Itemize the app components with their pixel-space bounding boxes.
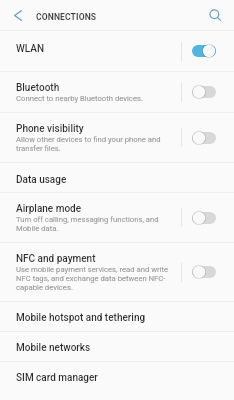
staticText: CONNECTIONS [36, 12, 97, 22]
button[interactable]: Airplane mode [0, 193, 234, 242]
staticText: Allow other devices to find your phone a… [16, 135, 161, 153]
button[interactable]: Turn on NFC and payment [181, 243, 234, 301]
button[interactable]: Mobile hotspot and tethering [0, 302, 234, 331]
staticText: Phone visibility [16, 123, 84, 135]
button[interactable]: Phone visibility [0, 113, 234, 162]
button[interactable]: Turn on Phone visibility [181, 113, 234, 162]
button[interactable]: NFC and payment [0, 243, 234, 301]
staticText: Use mobile payment services, read and wr… [16, 265, 169, 292]
staticText: Turn off calling, messaging functions, a… [16, 215, 159, 233]
button[interactable]: SIM card manager [0, 362, 234, 400]
staticText: Airplane mode [16, 203, 82, 215]
button[interactable]: Turn on Bluetooth [181, 72, 234, 112]
button[interactable]: Turn off WLAN [181, 31, 234, 71]
button[interactable]: Bluetooth [0, 72, 234, 112]
button[interactable]: Data usage [0, 163, 234, 192]
staticText: WLAN [16, 43, 45, 55]
staticText: Data usage [16, 174, 67, 186]
staticText: NFC and payment [16, 253, 96, 265]
button[interactable]: Turn on Airplane mode [181, 193, 234, 242]
staticText: Connect to nearby Bluetooth devices. [16, 94, 143, 103]
button[interactable]: Back [0, 0, 35, 30]
button[interactable]: WLAN [0, 31, 234, 71]
button[interactable]: Search [204, 0, 234, 30]
staticText: Mobile networks [16, 342, 91, 354]
staticText: Mobile hotspot and tethering [16, 312, 146, 324]
button[interactable]: Mobile networks [0, 332, 234, 361]
staticText: SIM card manager [16, 372, 98, 384]
staticText: Bluetooth [16, 82, 60, 94]
